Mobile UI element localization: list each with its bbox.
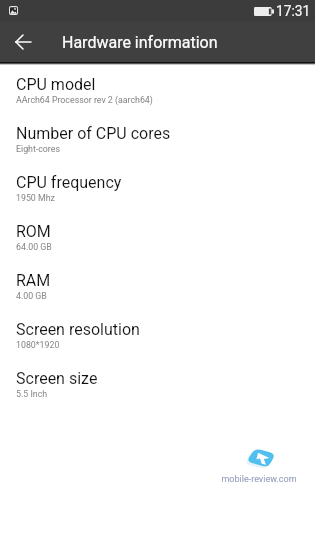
staticText: 5.5 Inch <box>16 389 48 399</box>
button[interactable]: Screen size <box>0 362 315 411</box>
staticText: Eight-cores <box>16 144 60 154</box>
staticText: 64.00 GB <box>16 242 52 252</box>
staticText: 4.00 GB <box>16 291 47 301</box>
button[interactable]: CPU frequency <box>0 166 315 215</box>
staticText: AArch64 Processor rev 2 (aarch64) <box>16 95 153 105</box>
staticText: RAM <box>16 271 51 290</box>
button[interactable]: Screen resolution <box>0 313 315 362</box>
staticText: 1950 Mhz <box>16 193 55 203</box>
button[interactable]: Back <box>6 25 40 59</box>
staticText: Number of CPU cores <box>16 124 171 143</box>
staticText: Screen size <box>16 369 98 388</box>
button[interactable]: CPU model <box>0 68 315 117</box>
staticText: CPU model <box>16 75 96 94</box>
staticText: mobile-review.com <box>221 474 297 485</box>
button[interactable]: RAM <box>0 264 315 313</box>
staticText: Screen resolution <box>16 320 140 339</box>
button[interactable]: Number of CPU cores <box>0 117 315 166</box>
staticText: 1080*1920 <box>16 340 60 350</box>
staticText: 17:31 <box>276 3 311 19</box>
button[interactable]: ROM <box>0 215 315 264</box>
staticText: Hardware information <box>62 33 218 52</box>
staticText: ROM <box>16 222 51 241</box>
staticText: CPU frequency <box>16 173 122 192</box>
